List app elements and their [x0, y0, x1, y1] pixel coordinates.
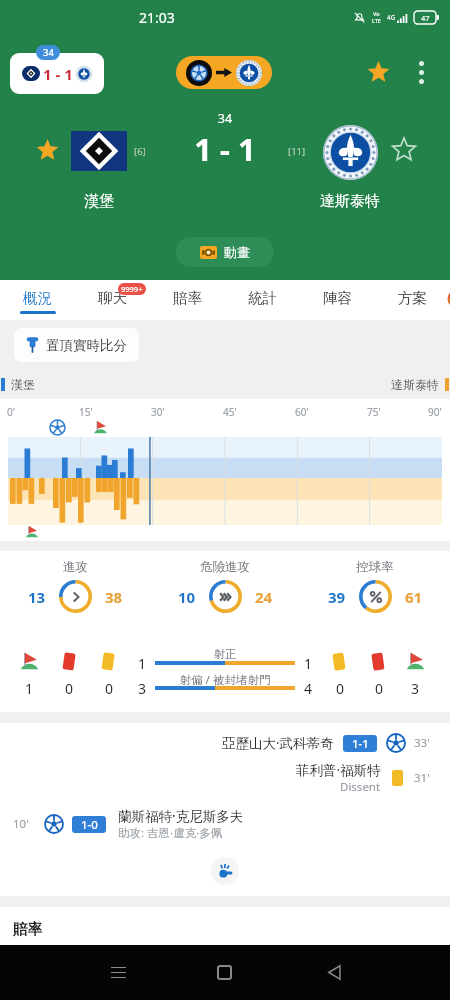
staticText: 置頂實時比分: [46, 337, 127, 354]
staticText: 21:03: [139, 8, 175, 27]
button[interactable]: Favourite home team: [32, 135, 62, 165]
staticText: 75': [367, 405, 381, 419]
staticText: 4G: [387, 13, 396, 22]
button[interactable]: 概況: [0, 280, 75, 320]
button[interactable]: Recents: [94, 948, 142, 996]
button[interactable]: 聊天: [75, 280, 150, 320]
staticText: 1: [138, 654, 147, 673]
button[interactable]: Back: [310, 948, 358, 996]
staticText: 蘭斯福特·克尼斯多夫: [118, 807, 244, 825]
staticText: 0: [65, 679, 74, 698]
button[interactable]: More options: [404, 55, 438, 89]
staticText: 亞歷山大·武科蒂奇: [222, 734, 334, 752]
staticText: 陣容: [323, 289, 352, 307]
staticText: 61: [405, 587, 423, 607]
staticText: Vo: [373, 10, 380, 17]
staticText: 助攻: 吉恩·盧克·多佩: [118, 825, 223, 841]
staticText: 方案: [398, 289, 427, 307]
staticText: 0: [336, 679, 345, 698]
button[interactable]: Favourite: [361, 55, 395, 89]
staticText: 菲利普·福斯特: [296, 761, 381, 779]
button[interactable]: 動畫: [176, 237, 274, 267]
button[interactable]: [176, 56, 272, 89]
staticText: 聊天: [98, 289, 127, 307]
staticText: LTE: [372, 17, 381, 24]
staticText: 4: [304, 679, 313, 698]
staticText: 15': [79, 405, 93, 419]
staticText: 1: [304, 654, 313, 673]
staticText: 漢堡: [52, 192, 146, 211]
staticText: 0: [105, 679, 114, 698]
staticText: 概況: [23, 289, 52, 307]
staticText: 賠率: [173, 289, 202, 307]
button[interactable]: 亞歷山大·武科蒂奇: [0, 729, 450, 757]
staticText: 動畫: [224, 244, 250, 260]
staticText: 30': [151, 405, 165, 419]
staticText: [6]: [134, 145, 146, 158]
button[interactable]: Home: [200, 948, 248, 996]
button[interactable]: 賠率: [0, 907, 450, 945]
staticText: 13: [28, 587, 46, 607]
staticText: 10': [13, 816, 29, 832]
staticText: 90': [428, 405, 442, 419]
staticText: Dissent: [340, 779, 381, 795]
staticText: 3: [411, 679, 420, 698]
button[interactable]: 置頂實時比分: [14, 328, 139, 362]
staticText: 1-1: [352, 736, 369, 752]
staticText: 1 - 1: [43, 64, 73, 84]
staticText: 危險進攻: [200, 559, 250, 575]
button[interactable]: 10': [0, 805, 450, 843]
staticText: 33': [414, 735, 430, 751]
button[interactable]: 進攻: [0, 559, 150, 613]
staticText: 31': [414, 770, 430, 786]
staticText: 賠率: [13, 920, 42, 938]
button[interactable]: 1 - 1: [10, 53, 104, 94]
staticText: 進攻: [63, 559, 88, 575]
button[interactable]: 方案: [375, 280, 450, 320]
staticText: 60': [295, 405, 309, 419]
staticText: 24: [255, 587, 273, 607]
staticText: 3: [138, 679, 147, 698]
staticText: 9999+: [121, 284, 143, 294]
button[interactable]: 危險進攻: [150, 559, 300, 613]
staticText: 達斯泰特: [303, 192, 397, 211]
staticText: 34: [43, 46, 54, 59]
button[interactable]: 統計: [225, 280, 300, 320]
staticText: 1-0: [81, 817, 98, 833]
button[interactable]: Favourite away team: [389, 135, 419, 165]
staticText: 1 - 1: [0, 128, 450, 170]
staticText: 1: [25, 679, 34, 698]
staticText: 控球率: [356, 559, 394, 575]
button[interactable]: 控球率: [300, 559, 450, 613]
staticText: 38: [105, 587, 123, 607]
staticText: 漢堡: [11, 377, 35, 392]
staticText: [11]: [288, 145, 306, 158]
staticText: 射正: [205, 647, 245, 661]
button[interactable]: 菲利普·福斯特: [0, 761, 450, 795]
staticText: 34: [0, 110, 450, 127]
staticText: 達斯泰特: [391, 377, 439, 392]
button[interactable]: 陣容: [300, 280, 375, 320]
staticText: 45': [223, 405, 237, 419]
staticText: 0: [375, 679, 384, 698]
button[interactable]: 賠率: [150, 280, 225, 320]
staticText: 39: [328, 587, 346, 607]
staticText: 統計: [248, 289, 277, 307]
staticText: 0': [7, 405, 15, 419]
staticText: 10: [178, 587, 196, 607]
staticText: 47: [421, 13, 430, 23]
staticText: 射偏 / 被封堵射門: [170, 672, 280, 688]
